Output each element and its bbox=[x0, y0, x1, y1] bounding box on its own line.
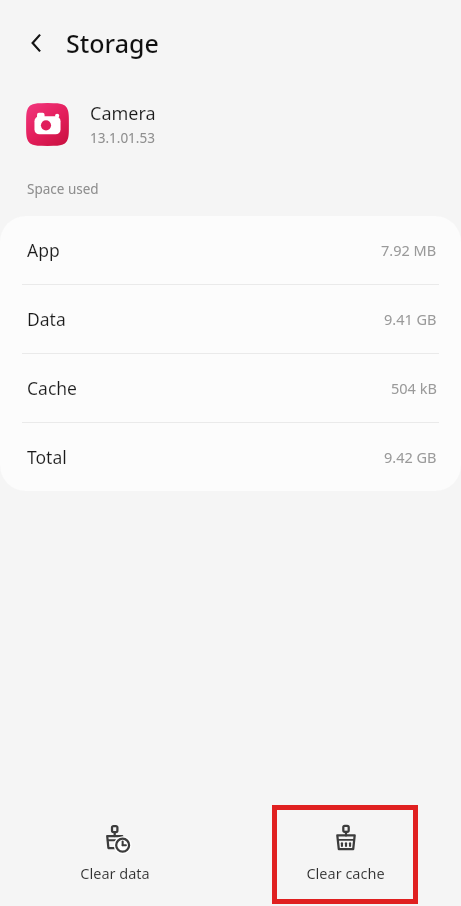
button[interactable]: Back bbox=[14, 20, 60, 66]
staticText: 13.1.01.53 bbox=[90, 129, 155, 147]
staticText: Total bbox=[27, 445, 67, 469]
staticText: Storage bbox=[66, 26, 159, 60]
button[interactable]: Total bbox=[0, 423, 461, 491]
button[interactable]: App bbox=[0, 216, 461, 284]
button[interactable]: Data bbox=[0, 285, 461, 353]
other: Clear data bbox=[100, 824, 130, 854]
button[interactable]: Clear cache bbox=[230, 814, 461, 893]
other: Clear cache bbox=[331, 824, 361, 854]
button[interactable]: Cache bbox=[0, 354, 461, 422]
button[interactable]: Clear data bbox=[0, 814, 230, 893]
staticText: App bbox=[27, 238, 60, 262]
staticText: 504 kB bbox=[391, 378, 437, 398]
staticText: Space used bbox=[27, 180, 99, 198]
staticText: Camera bbox=[90, 101, 156, 126]
staticText: Cache bbox=[27, 376, 77, 400]
staticText: 9.42 GB bbox=[384, 447, 437, 467]
staticText: Clear data bbox=[80, 863, 150, 883]
staticText: 9.41 GB bbox=[384, 309, 437, 329]
staticText: Data bbox=[27, 307, 66, 331]
staticText: 7.92 MB bbox=[381, 240, 437, 260]
staticText: Clear cache bbox=[306, 863, 385, 883]
